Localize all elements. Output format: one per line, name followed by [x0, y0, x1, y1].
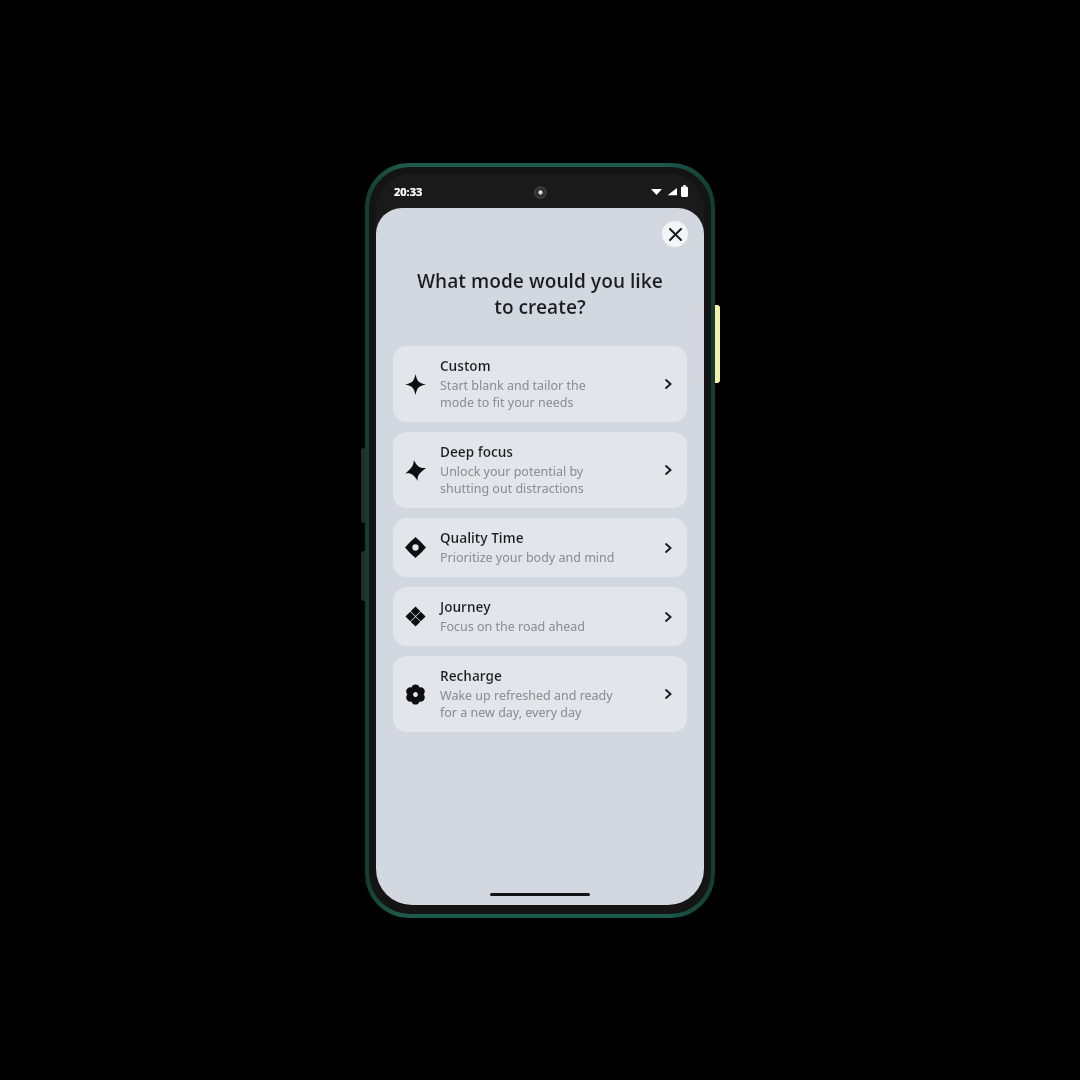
button[interactable]: Deep focus — [393, 432, 687, 508]
staticText: Unlock your potential by — [440, 463, 584, 480]
button[interactable]: Custom — [393, 346, 687, 422]
staticText: for a new day, every day — [440, 704, 582, 721]
button[interactable]: Close — [662, 221, 688, 247]
staticText: 20:33 — [394, 184, 423, 199]
staticText: Prioritize your body and mind — [440, 549, 615, 566]
staticText: What mode would you like to create? — [398, 268, 682, 319]
staticText: Start blank and tailor the — [440, 377, 586, 394]
button[interactable]: Journey — [393, 587, 687, 646]
staticText: Deep focus — [440, 443, 514, 461]
button[interactable]: Recharge — [393, 656, 687, 732]
staticText: Quality Time — [440, 529, 524, 547]
staticText: Journey — [440, 598, 491, 616]
staticText: Focus on the road ahead — [440, 618, 586, 635]
staticText: Custom — [440, 357, 491, 375]
staticText: shutting out distractions — [440, 480, 584, 497]
staticText: mode to fit your needs — [440, 394, 574, 411]
button[interactable]: Quality Time — [393, 518, 687, 577]
staticText: Wake up refreshed and ready — [440, 687, 613, 704]
staticText: Recharge — [440, 667, 502, 685]
